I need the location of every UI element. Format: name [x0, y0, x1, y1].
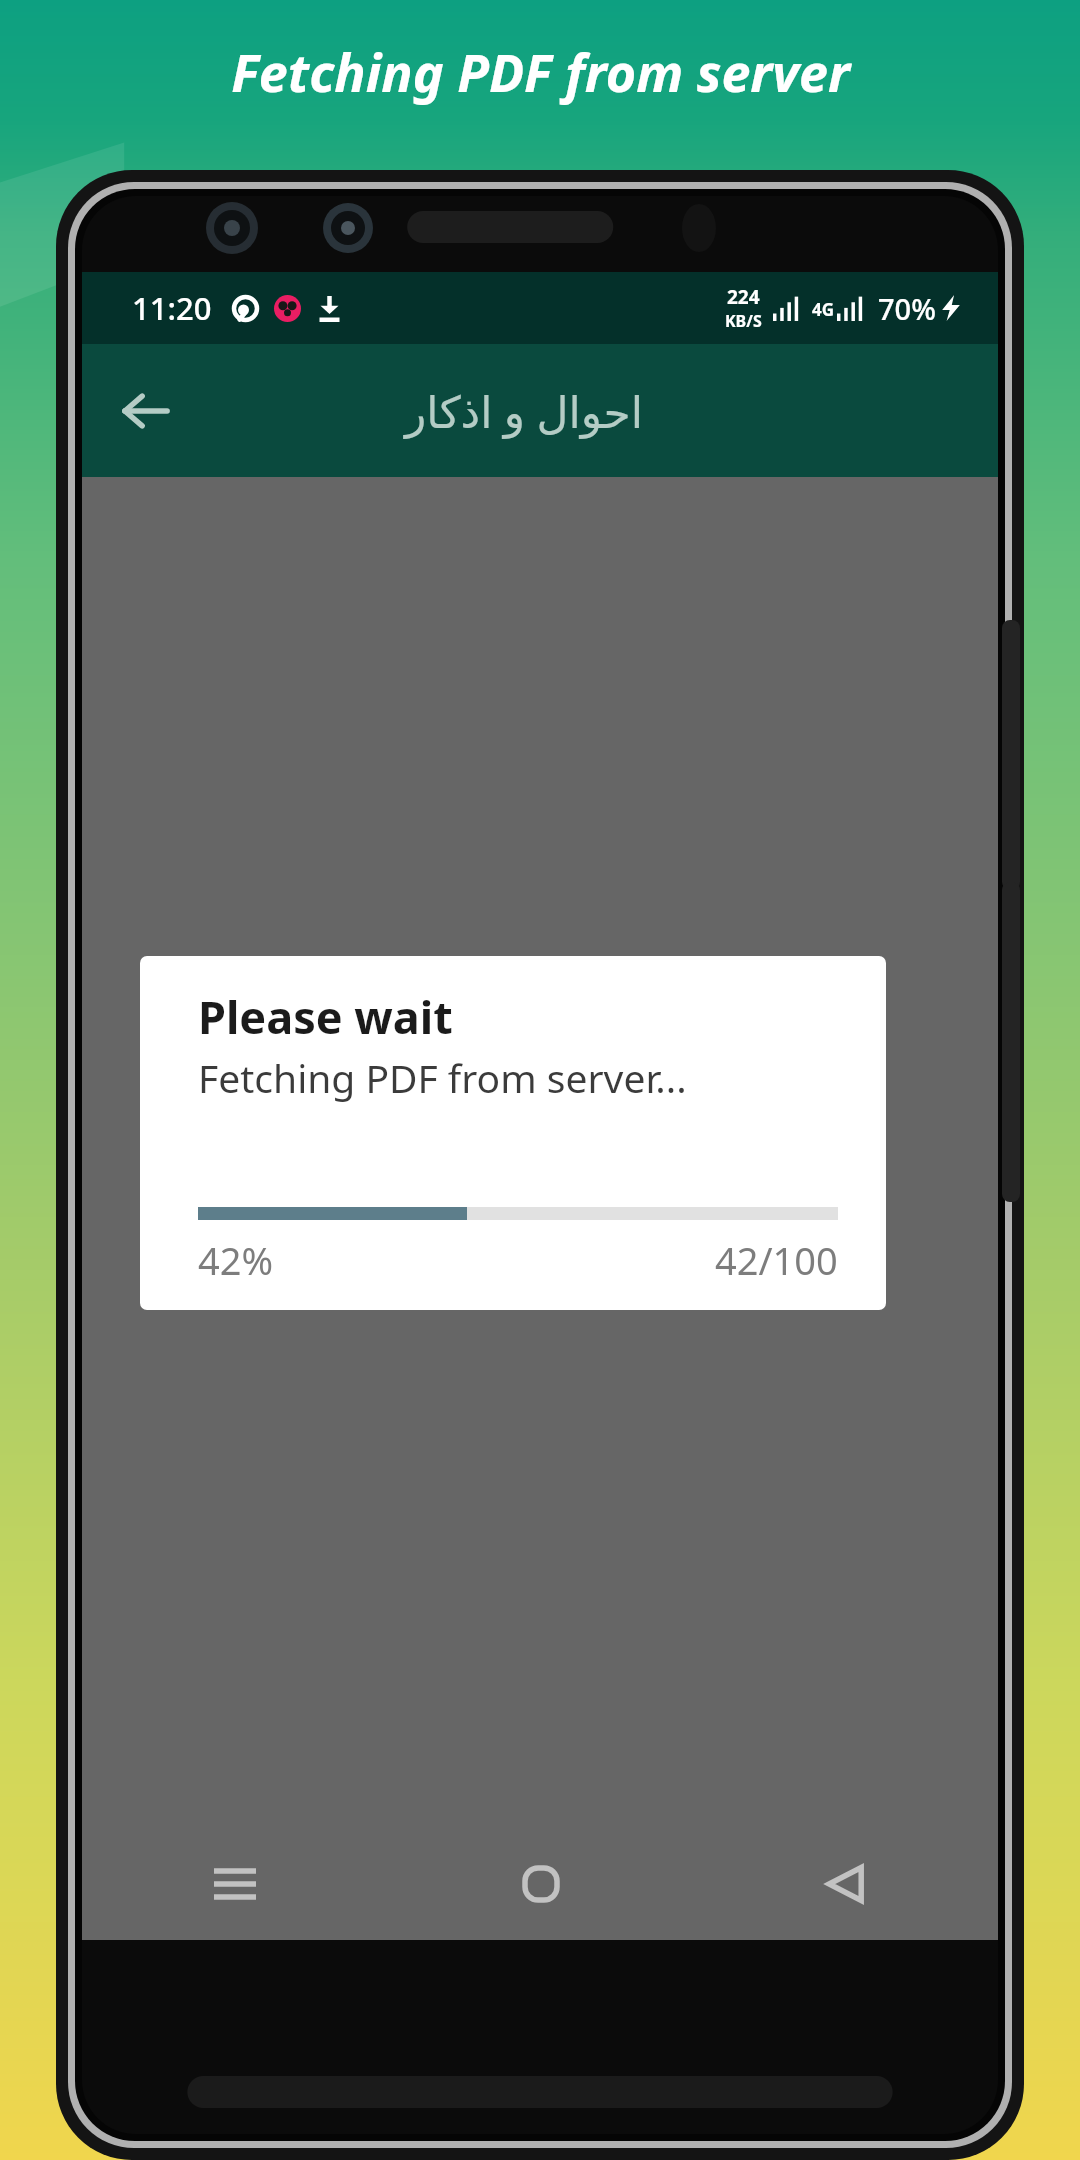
staticText: Fetching PDF from server... — [198, 1051, 687, 1104]
staticText: 70% — [878, 289, 936, 328]
staticText: 42/100 — [715, 1234, 838, 1286]
button[interactable]: Back — [693, 1828, 998, 1940]
staticText: احوال و اذكار — [405, 381, 643, 441]
staticText: 11:20 — [132, 287, 212, 329]
button[interactable]: Home — [388, 1828, 693, 1940]
staticText: 42% — [198, 1234, 274, 1286]
staticText: KB/S — [725, 310, 762, 332]
staticText: Please wait — [198, 986, 453, 1047]
staticText: 224 — [727, 284, 760, 310]
button[interactable]: Recents — [82, 1828, 388, 1940]
button[interactable]: Back — [98, 363, 194, 459]
staticText: 4G — [812, 298, 835, 321]
staticText: Fetching PDF from server — [231, 36, 850, 107]
